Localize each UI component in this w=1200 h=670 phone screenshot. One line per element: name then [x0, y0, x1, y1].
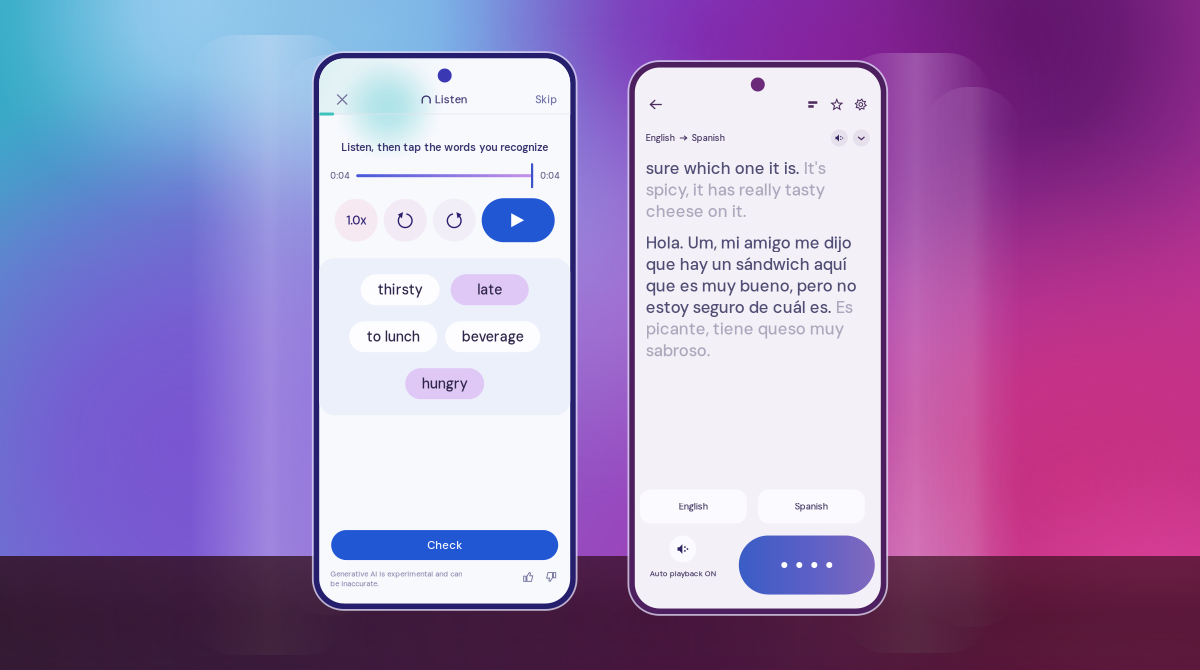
button[interactable]: late [451, 274, 529, 305]
button[interactable]: hungry [405, 368, 484, 399]
button[interactable]: 1.0x [335, 199, 378, 242]
button[interactable]: Replay [384, 199, 427, 242]
staticText: English [679, 501, 708, 512]
button[interactable]: Listening [739, 535, 875, 594]
button[interactable]: Good response [520, 569, 536, 585]
staticText: Listen, then tap the words you recognize [341, 140, 548, 154]
button[interactable]: beverage [445, 321, 540, 352]
button[interactable]: English [640, 489, 747, 523]
button[interactable]: Auto playback [669, 535, 696, 562]
button[interactable]: Collapse [848, 129, 870, 146]
button[interactable]: thirsty [361, 274, 440, 305]
staticText: late [477, 281, 502, 299]
button[interactable]: Play [482, 198, 555, 242]
button[interactable]: Skip forward [433, 199, 476, 242]
staticText: Generative AI is experimental and can be… [330, 569, 462, 588]
staticText: Hola. Um, mi amigo me dijo que hay un sá… [646, 232, 857, 361]
button[interactable]: to lunch [349, 321, 437, 352]
button[interactable]: Spanish [758, 489, 865, 523]
staticText: Check [427, 538, 462, 552]
button[interactable]: Back [643, 91, 669, 117]
staticText: thirsty [378, 281, 423, 299]
button[interactable]: Transcript [801, 92, 825, 116]
staticText: sure which one it is. It's spicy, it has… [646, 157, 826, 222]
staticText: Listen [435, 92, 468, 107]
staticText: to lunch [367, 328, 420, 346]
staticText: Spanish [795, 501, 828, 512]
staticText: Spanish [692, 132, 725, 144]
button[interactable]: Settings [849, 92, 873, 116]
button[interactable]: Close [328, 87, 356, 111]
staticText: Skip [535, 93, 557, 106]
button[interactable]: Save [825, 92, 849, 116]
staticText: 1.0x [346, 212, 366, 228]
button[interactable]: Mute audio [831, 129, 848, 146]
staticText: 0:04 [540, 170, 559, 181]
staticText: hungry [422, 375, 468, 393]
staticText: English [646, 132, 675, 144]
button[interactable]: Bad response [536, 569, 559, 585]
staticText: beverage [462, 328, 524, 346]
button[interactable]: Check [331, 530, 558, 560]
staticText: Auto playback ON [650, 568, 716, 579]
staticText: 0:04 [330, 170, 349, 181]
button[interactable]: Skip [531, 87, 561, 111]
